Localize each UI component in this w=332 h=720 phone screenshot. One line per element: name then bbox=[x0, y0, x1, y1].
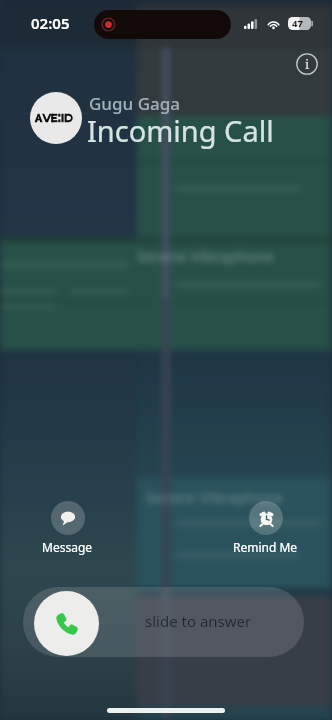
staticText: Gugu Gaga bbox=[89, 92, 180, 115]
staticText: 47 bbox=[292, 17, 303, 30]
staticText: 02:05 bbox=[31, 13, 70, 33]
button[interactable]: Call info bbox=[296, 53, 318, 75]
button[interactable]: slide to answer bbox=[23, 587, 304, 657]
staticText: Message bbox=[42, 539, 93, 555]
button[interactable]: Remind Me bbox=[233, 501, 298, 555]
staticText: i bbox=[305, 55, 310, 73]
staticText: Serene Vibraphone bbox=[146, 487, 283, 507]
staticText: Incoming Call bbox=[87, 111, 274, 150]
staticText: Serene Vibraphone bbox=[137, 246, 274, 266]
staticText: Remind Me bbox=[233, 539, 298, 555]
staticText: slide to answer bbox=[145, 611, 252, 631]
button[interactable]: Message bbox=[42, 501, 93, 555]
